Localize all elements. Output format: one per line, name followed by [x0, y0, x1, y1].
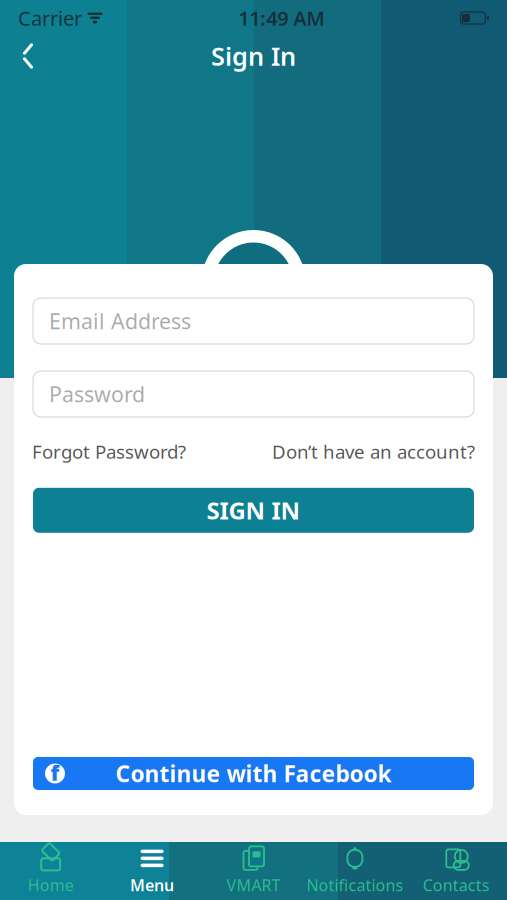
staticText: Forgot Password? [32, 439, 186, 464]
button[interactable]: Back [6, 34, 50, 78]
staticText: 11:49 AM [238, 5, 325, 31]
staticText: SIGN IN [206, 494, 300, 526]
button[interactable]: Notifications [304, 842, 406, 900]
button[interactable]: Don’t have an account? [272, 439, 475, 464]
staticText: f [50, 758, 59, 787]
button[interactable]: VMART [203, 842, 304, 900]
staticText: VMART [226, 874, 280, 896]
staticText: Notifications [306, 874, 403, 896]
staticText: Menu [130, 874, 174, 896]
button[interactable]: Menu [101, 842, 203, 900]
staticText: Password [49, 380, 145, 408]
button[interactable]: f [33, 757, 474, 790]
staticText: Email Address [49, 307, 191, 335]
staticText: Home [28, 874, 74, 896]
button[interactable]: Forgot Password? [32, 439, 186, 464]
button[interactable]: Home [0, 842, 101, 900]
staticText: Carrier [18, 5, 82, 31]
button[interactable]: Contacts [406, 842, 507, 900]
staticText: Sign In [211, 39, 296, 73]
staticText: Continue with Facebook [115, 758, 391, 788]
staticText: Don’t have an account? [272, 439, 475, 464]
button[interactable]: SIGN IN [33, 488, 474, 533]
staticText: Contacts [423, 874, 490, 896]
